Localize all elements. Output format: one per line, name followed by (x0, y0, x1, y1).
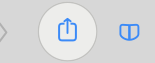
button[interactable]: Forward (0, 10, 13, 54)
button[interactable]: Bookmarks (107, 10, 151, 54)
button[interactable]: Share (37, 2, 97, 62)
